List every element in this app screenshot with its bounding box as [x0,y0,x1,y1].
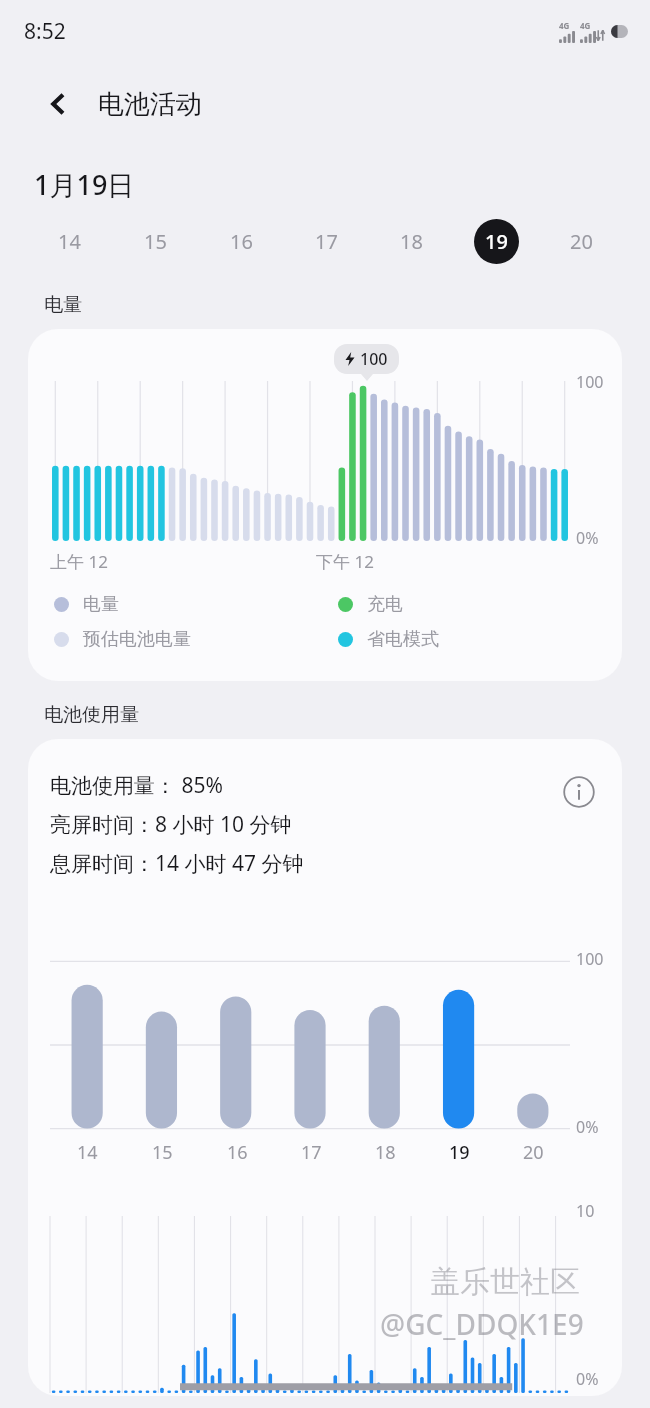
staticText: 16 [230,228,253,255]
staticText: 20 [570,228,593,255]
button[interactable]: 20 [539,203,624,279]
button[interactable]: Back [36,81,82,127]
staticText: 18 [375,1140,396,1165]
staticText: 1月19日 [34,166,135,203]
button[interactable]: Information [558,771,600,813]
staticText: 100 [576,948,604,970]
staticText: 100 [576,371,604,393]
staticText: 18 [400,228,423,255]
staticText: 电池使用量 [44,703,139,727]
staticText: 14 [58,228,81,255]
button[interactable]: 17 [284,203,369,279]
staticText: 电量 [44,293,82,317]
staticText: 0% [576,1116,599,1138]
staticText: @GC_DDQK1E9 [380,1305,584,1343]
staticText: 充电 [367,593,403,616]
staticText: 10 [576,1200,595,1222]
button[interactable]: 预估电池电量 [54,628,338,651]
staticText: 14 [77,1140,98,1165]
button[interactable]: 18 [369,203,454,279]
button[interactable]: 15 [112,203,198,279]
staticText: 上午 12 [50,550,108,573]
staticText: 电池使用量： 85% [50,771,223,800]
staticText: 8:52 [24,17,66,46]
button[interactable]: 19 [454,203,539,279]
staticText: 息屏时间：14 小时 47 分钟 [50,849,304,878]
staticText: 19 [449,1140,470,1165]
staticText: 20 [523,1140,544,1165]
staticText: 19 [485,228,508,255]
staticText: 预估电池电量 [83,628,191,651]
button[interactable]: 电池使用量： 85% [28,739,622,1396]
staticText: 电池活动 [98,88,202,121]
staticText: 15 [144,228,167,255]
staticText: 4G [580,20,591,31]
staticText: 4G [559,20,570,31]
button[interactable]: 100 [28,329,622,681]
staticText: 亮屏时间：8 小时 10 分钟 [50,810,292,839]
staticText: 15 [152,1140,173,1165]
staticText: 16 [227,1140,248,1165]
staticText: 0% [576,1368,599,1390]
staticText: 电量 [83,593,119,616]
staticText: 下午 12 [316,550,374,573]
staticText: 省电模式 [367,628,439,651]
staticText: 100 [360,348,388,370]
button[interactable]: 电量 [54,593,338,616]
button[interactable]: 省电模式 [338,628,622,651]
button[interactable]: 16 [198,203,284,279]
staticText: 17 [315,228,338,255]
button[interactable]: 14 [26,203,112,279]
staticText: 17 [301,1140,322,1165]
staticText: 0% [576,527,599,549]
staticText: 盖乐世社区 [430,1263,580,1301]
button[interactable]: 充电 [338,593,622,616]
